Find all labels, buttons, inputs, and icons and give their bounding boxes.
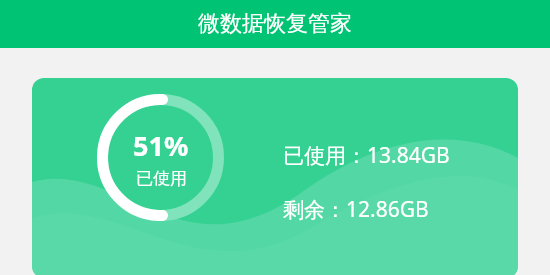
staticText: 剩余：12.86GB (283, 195, 429, 224)
staticText: 微数据恢复管家 (198, 10, 352, 38)
button[interactable]: 微数据恢复管家 (0, 0, 550, 48)
staticText: 已使用：13.84GB (283, 141, 450, 170)
button[interactable]: 51% (32, 78, 518, 275)
staticText: 51% (133, 127, 189, 164)
staticText: 已使用 (136, 168, 187, 189)
